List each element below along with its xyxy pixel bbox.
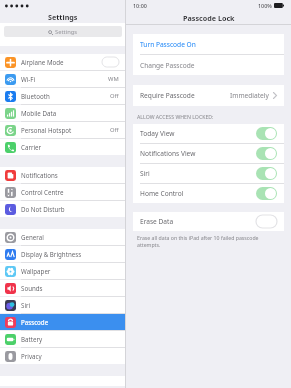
button[interactable]: Siri bbox=[0, 297, 125, 313]
staticText: Immediately bbox=[230, 91, 269, 100]
button[interactable]: Turn Passcode On bbox=[133, 34, 284, 54]
button[interactable]: General bbox=[0, 229, 125, 245]
staticText: ALLOW ACCESS WHEN LOCKED: bbox=[137, 113, 214, 120]
staticText: Off bbox=[110, 126, 119, 134]
button[interactable]: Require Passcode bbox=[133, 85, 284, 106]
button[interactable]: Siri bbox=[133, 164, 284, 183]
button[interactable]: Settings bbox=[4, 26, 122, 37]
button[interactable]: Sounds bbox=[0, 280, 125, 296]
staticText: Settings bbox=[55, 28, 78, 36]
staticText: WM bbox=[108, 75, 119, 83]
button[interactable]: Notifications View bbox=[133, 144, 284, 163]
button[interactable]: Carrier bbox=[0, 139, 125, 155]
staticText: 10:00 bbox=[133, 2, 147, 9]
staticText: Erase all data on this iPad after 10 fai… bbox=[137, 234, 281, 248]
button[interactable]: Control Centre bbox=[0, 184, 125, 200]
staticText: Today View bbox=[140, 129, 175, 138]
staticText: Siri bbox=[140, 169, 150, 178]
staticText: Siri bbox=[21, 301, 31, 309]
staticText: Turn Passcode On bbox=[140, 40, 196, 49]
button[interactable]: Display & Brightness bbox=[0, 246, 125, 262]
button[interactable]: Notifications bbox=[0, 167, 125, 183]
staticText: Privacy bbox=[21, 352, 42, 360]
staticText: Sounds bbox=[21, 284, 43, 292]
button[interactable]: Bluetooth bbox=[0, 88, 125, 104]
button[interactable]: Personal Hotspot bbox=[0, 122, 125, 138]
staticText: Passcode Lock bbox=[183, 13, 235, 23]
staticText: Control Centre bbox=[21, 188, 64, 196]
staticText: Off bbox=[110, 92, 119, 100]
button[interactable]: Passcode bbox=[0, 314, 125, 330]
button[interactable]: Do Not Disturb bbox=[0, 201, 125, 217]
button[interactable]: Change Passcode bbox=[133, 55, 284, 75]
staticText: Airplane Mode bbox=[21, 58, 64, 66]
staticText: Do Not Disturb bbox=[21, 205, 65, 213]
button[interactable]: Airplane Mode bbox=[0, 54, 125, 70]
button[interactable]: Mobile Data bbox=[0, 105, 125, 121]
staticText: Bluetooth bbox=[21, 92, 50, 100]
staticText: Battery bbox=[21, 335, 43, 343]
staticText: Require Passcode bbox=[140, 91, 195, 100]
staticText: Wi-Fi bbox=[21, 75, 36, 83]
staticText: Passcode bbox=[21, 318, 49, 326]
staticText: Display & Brightness bbox=[21, 250, 82, 258]
staticText: Mobile Data bbox=[21, 109, 57, 117]
staticText: Notifications View bbox=[140, 149, 196, 158]
button[interactable]: Wallpaper bbox=[0, 263, 125, 279]
staticText: Home Control bbox=[140, 189, 184, 198]
staticText: Personal Hotspot bbox=[21, 126, 72, 134]
staticText: Settings bbox=[48, 12, 78, 22]
button[interactable]: Wi-Fi bbox=[0, 71, 125, 87]
button[interactable]: Battery bbox=[0, 331, 125, 347]
staticText: Wallpaper bbox=[21, 267, 51, 275]
staticText: Change Passcode bbox=[140, 61, 195, 70]
button[interactable]: Privacy bbox=[0, 348, 125, 364]
staticText: General bbox=[21, 233, 44, 241]
button[interactable]: Today View bbox=[133, 124, 284, 143]
staticText: Erase Data bbox=[140, 217, 174, 226]
button[interactable]: Erase Data bbox=[133, 212, 284, 231]
staticText: Carrier bbox=[21, 143, 42, 151]
staticText: Notifications bbox=[21, 171, 58, 179]
staticText: 100% bbox=[258, 2, 272, 9]
button[interactable]: Home Control bbox=[133, 184, 284, 203]
